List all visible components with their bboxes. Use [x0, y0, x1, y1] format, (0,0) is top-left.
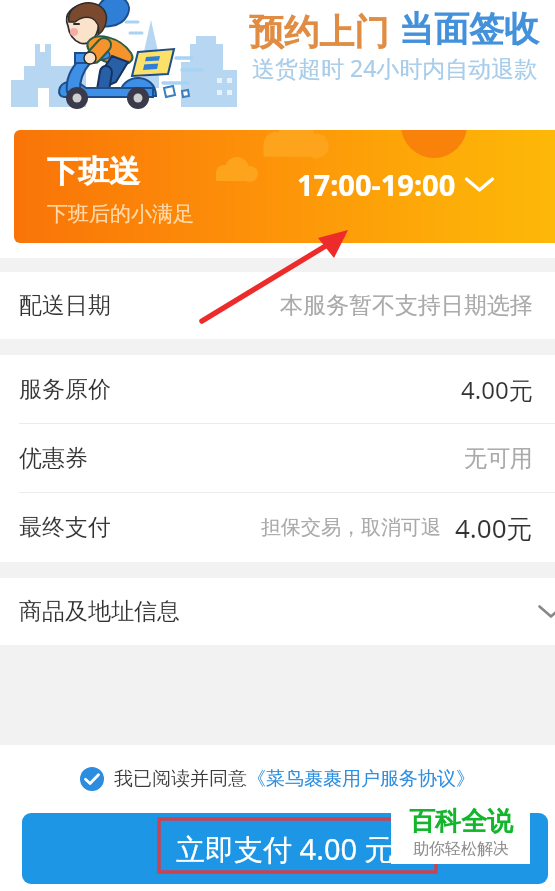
staticText: 立即支付 4.00 元 — [176, 829, 394, 869]
staticText: 百科全说 — [409, 805, 513, 838]
staticText: 17:00-19:00 — [297, 165, 456, 204]
button[interactable]: 立即支付 4.00 元 — [22, 813, 548, 884]
staticText: 服务原价 — [19, 375, 111, 404]
button[interactable]: 下班送 — [14, 130, 555, 243]
staticText: 送货超时 24小时内自动退款 — [252, 52, 538, 83]
button[interactable]: 商品及地址信息 — [19, 578, 555, 645]
button[interactable]: 《菜鸟裹裹用户服务协议》 — [247, 767, 475, 791]
staticText: 本服务暂不支持日期选择 — [280, 291, 533, 320]
staticText: 优惠券 — [19, 444, 88, 473]
staticText: 担保交易，取消可退 — [261, 515, 441, 540]
staticText: 配送日期 — [19, 291, 111, 320]
staticText: 预约上门 — [249, 7, 399, 55]
button[interactable]: 配送日期 — [19, 272, 533, 339]
button[interactable]: Agree to terms — [80, 767, 104, 791]
staticText: 下班后的小满足 — [47, 201, 194, 227]
button[interactable]: 优惠券 — [19, 424, 533, 492]
staticText: 4.00元 — [461, 373, 533, 406]
staticText: 下班送 — [47, 152, 140, 191]
staticText: 我已阅读并同意 — [114, 767, 247, 791]
staticText: 最终支付 — [19, 513, 111, 542]
staticText: 当面签收 — [399, 7, 539, 51]
staticText: 商品及地址信息 — [19, 597, 180, 626]
staticText: 4.00元 — [455, 510, 533, 546]
staticText: 助你轻松解决 — [413, 839, 509, 859]
staticText: 无可用 — [464, 444, 533, 473]
